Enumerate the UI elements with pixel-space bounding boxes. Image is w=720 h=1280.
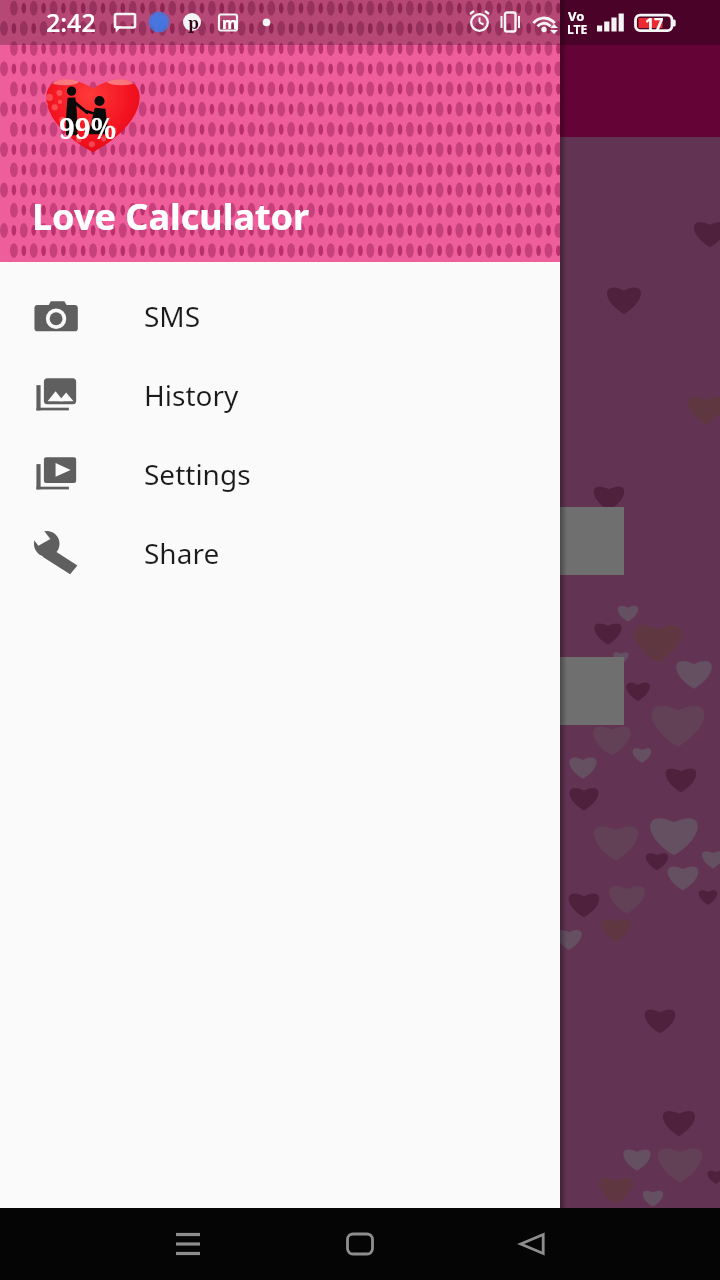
button[interactable]: Settings: [0, 434, 560, 513]
staticText: 99%: [59, 109, 117, 147]
button[interactable]: Back: [492, 1224, 572, 1264]
button[interactable]: SMS: [0, 276, 560, 355]
staticText: Share: [144, 534, 220, 572]
staticText: 17: [645, 13, 664, 35]
staticText: Settings: [144, 455, 251, 493]
staticText: Love Calculator: [32, 192, 310, 241]
staticText: SMS: [144, 297, 201, 335]
staticText: m: [222, 12, 238, 34]
staticText: History: [144, 376, 239, 414]
button[interactable]: Recent apps: [148, 1224, 228, 1264]
staticText: 2:42: [46, 5, 96, 39]
staticText: p: [188, 11, 199, 34]
staticText: Vo: [568, 7, 585, 25]
button[interactable]: Home: [320, 1224, 400, 1264]
button[interactable]: Close navigation drawer: [560, 0, 720, 1208]
button[interactable]: History: [0, 355, 560, 434]
button[interactable]: Share: [0, 513, 560, 592]
staticText: LTE: [567, 21, 588, 37]
